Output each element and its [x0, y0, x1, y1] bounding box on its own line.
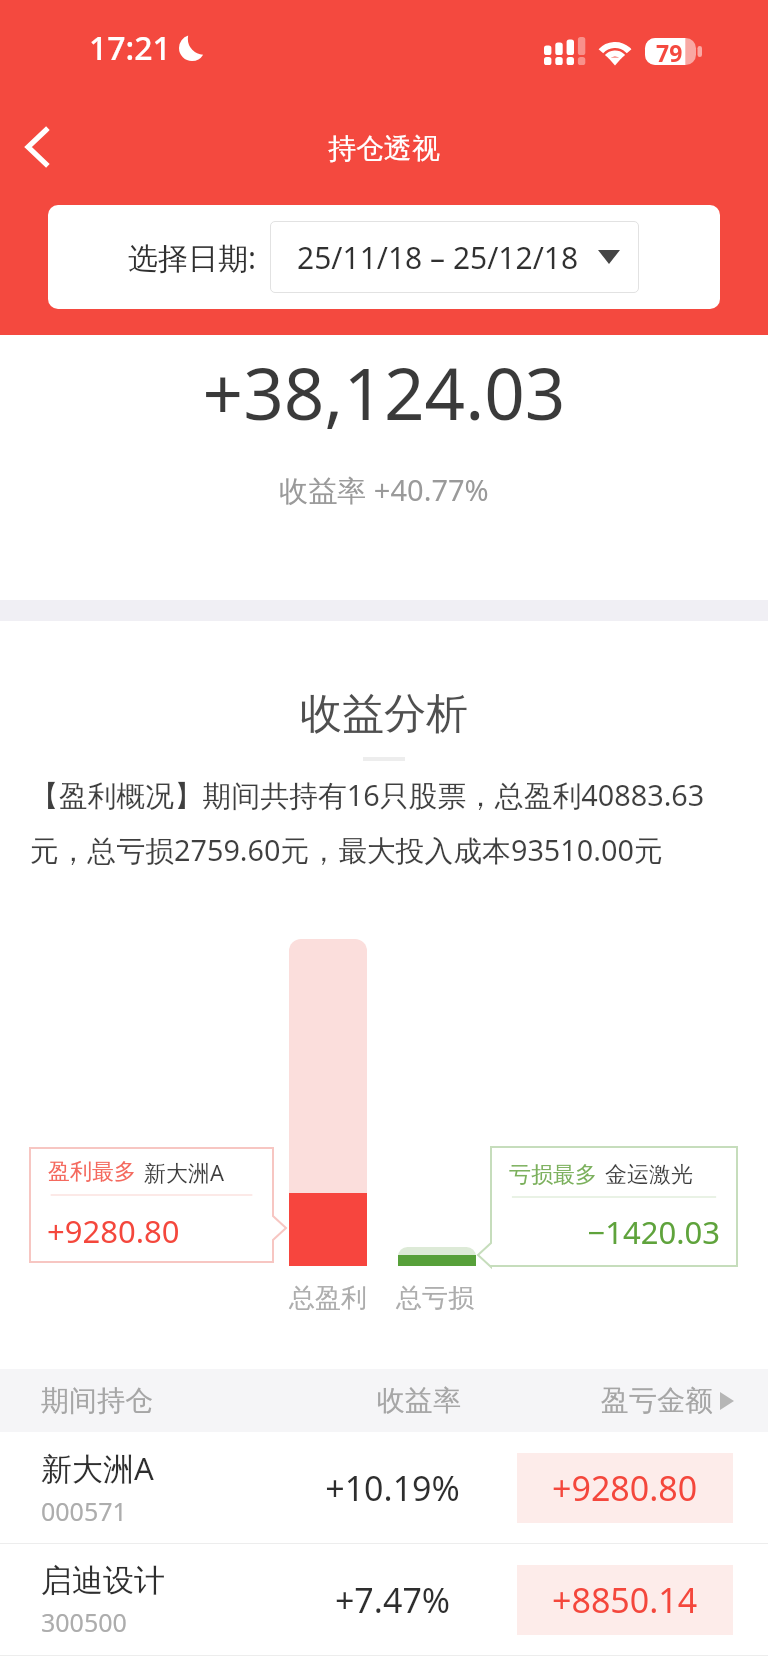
staticText: +38,124.03: [0, 344, 768, 441]
staticText: 盈利最多: [48, 1158, 136, 1186]
staticText: 300500: [41, 1605, 127, 1639]
staticText: +10.19%: [300, 1465, 485, 1511]
staticText: −1420.03: [508, 1211, 720, 1253]
staticText: +9280.80: [552, 1465, 698, 1511]
staticText: 新大洲A: [144, 1157, 225, 1187]
staticText: 收益率: [377, 1383, 461, 1418]
staticText: 总亏损: [383, 1282, 487, 1315]
staticText: 启迪设计: [41, 1561, 165, 1600]
button[interactable]: 25/11/18 – 25/12/18: [270, 221, 639, 293]
staticText: 收益率 +40.77%: [0, 470, 768, 510]
staticText: +9280.80: [47, 1210, 256, 1252]
button[interactable]: 收益率: [377, 1369, 461, 1432]
button[interactable]: 期间持仓: [0, 1369, 160, 1432]
button[interactable]: Back: [4, 114, 70, 180]
staticText: 25/11/18 – 25/12/18: [297, 237, 579, 278]
button[interactable]: 新大洲A: [0, 1432, 768, 1543]
staticText: 金运激光: [605, 1161, 693, 1189]
button[interactable]: 盈利最多: [30, 1148, 273, 1262]
staticText: +7.47%: [300, 1577, 485, 1623]
button[interactable]: 启迪设计: [0, 1544, 768, 1655]
staticText: 期间持仓: [41, 1383, 153, 1418]
button[interactable]: 亏损最多: [491, 1147, 737, 1266]
button[interactable]: 盈亏金额: [601, 1369, 734, 1432]
staticText: 选择日期:: [128, 237, 257, 278]
staticText: 总盈利: [276, 1282, 380, 1315]
staticText: 79: [656, 37, 683, 68]
staticText: 新大洲A: [41, 1447, 154, 1489]
staticText: 持仓透视: [328, 131, 440, 166]
staticText: 000571: [41, 1494, 127, 1528]
staticText: 17:21: [89, 26, 171, 70]
staticText: +8850.14: [552, 1577, 698, 1623]
staticText: 亏损最多: [509, 1161, 597, 1189]
staticText: 收益分析: [0, 688, 768, 741]
staticText: 【盈利概况】期间共持有16只股票，总盈利40883.63元，总亏损2759.60…: [30, 775, 744, 869]
staticText: 盈亏金额: [601, 1383, 713, 1418]
